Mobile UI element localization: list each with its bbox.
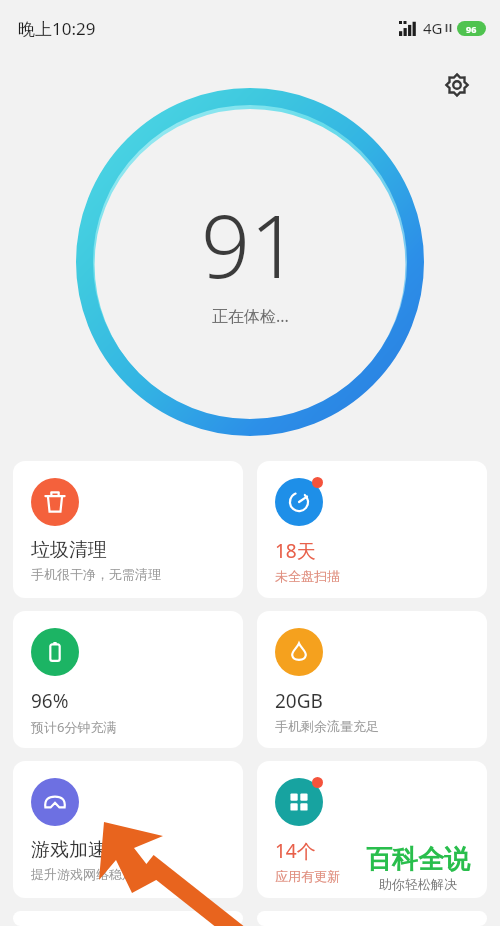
staticText: 手机剩余流量充足 (275, 718, 379, 734)
staticText: 手机很干净，无需清理 (31, 566, 161, 582)
staticText: 正在体检... (212, 305, 289, 327)
button[interactable]: 91 (74, 86, 426, 438)
staticText: 预计6分钟充满 (31, 718, 117, 736)
staticText: 20GB (275, 688, 323, 714)
staticText: 4G (423, 18, 443, 38)
staticText: 游戏加速 (31, 838, 107, 862)
staticText: 18天 (275, 538, 316, 564)
button[interactable]: 20GB (257, 611, 487, 748)
staticText: 百科全说 (366, 843, 470, 876)
staticText: 助你轻松解决 (379, 876, 457, 892)
staticText: 晚上10:29 (18, 17, 96, 40)
staticText: 96% (31, 688, 69, 714)
staticText: 垃圾清理 (31, 538, 107, 562)
staticText: 提升游戏网络稳定性 (31, 866, 148, 882)
staticText: 应用有更新 (275, 868, 340, 884)
button[interactable] (13, 911, 243, 926)
button[interactable]: 96% (13, 611, 243, 748)
staticText: 14个 (275, 838, 316, 864)
staticText: 未全盘扫描 (275, 568, 340, 584)
button[interactable]: 14个 (257, 761, 487, 898)
button[interactable]: Settings (437, 65, 477, 105)
button[interactable]: 18天 (257, 461, 487, 598)
staticText: 96 (466, 23, 477, 35)
staticText: 91 (201, 186, 300, 303)
button[interactable]: 垃圾清理 (13, 461, 243, 598)
button[interactable]: 游戏加速 (13, 761, 243, 898)
